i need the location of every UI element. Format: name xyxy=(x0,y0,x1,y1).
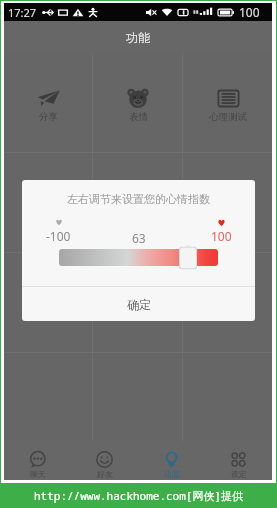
staticText: 分享 xyxy=(39,111,58,123)
staticText: 100 xyxy=(211,228,232,244)
button[interactable] xyxy=(183,153,272,252)
staticText: 100 xyxy=(239,4,260,20)
staticText: 聊天 xyxy=(30,469,46,479)
button[interactable]: 好友 xyxy=(71,441,138,480)
button[interactable]: 设定 xyxy=(205,441,272,480)
staticText: -100 xyxy=(46,228,71,244)
staticText: http://www.hackhome.com[网侠]提供 xyxy=(34,488,243,503)
button[interactable] xyxy=(4,153,92,252)
button[interactable]: 功能 xyxy=(138,441,205,480)
button[interactable] xyxy=(93,153,182,252)
staticText: 17:27 xyxy=(8,5,37,20)
staticText: 心理测试 xyxy=(209,111,247,123)
button[interactable] xyxy=(93,253,182,352)
button[interactable] xyxy=(183,253,272,352)
staticText: 功能 xyxy=(164,469,180,479)
staticText: 63 xyxy=(132,230,146,246)
button[interactable]: 分享 xyxy=(4,53,92,152)
staticText: 好友 xyxy=(97,469,113,479)
button[interactable]: 聊天 xyxy=(4,441,71,480)
staticText: 确定 xyxy=(127,297,151,312)
button[interactable] xyxy=(4,253,92,352)
staticText: 表情 xyxy=(129,111,148,123)
staticText: 功能 xyxy=(126,30,150,45)
staticText: 设定 xyxy=(231,469,247,479)
button[interactable]: 心理测试 xyxy=(183,53,272,152)
button[interactable]: 确定 xyxy=(22,287,255,321)
staticText: 左右调节来设置您的心情指数 xyxy=(22,192,255,206)
button[interactable]: Mood slider xyxy=(177,245,199,271)
button[interactable]: 表情 xyxy=(93,53,182,152)
